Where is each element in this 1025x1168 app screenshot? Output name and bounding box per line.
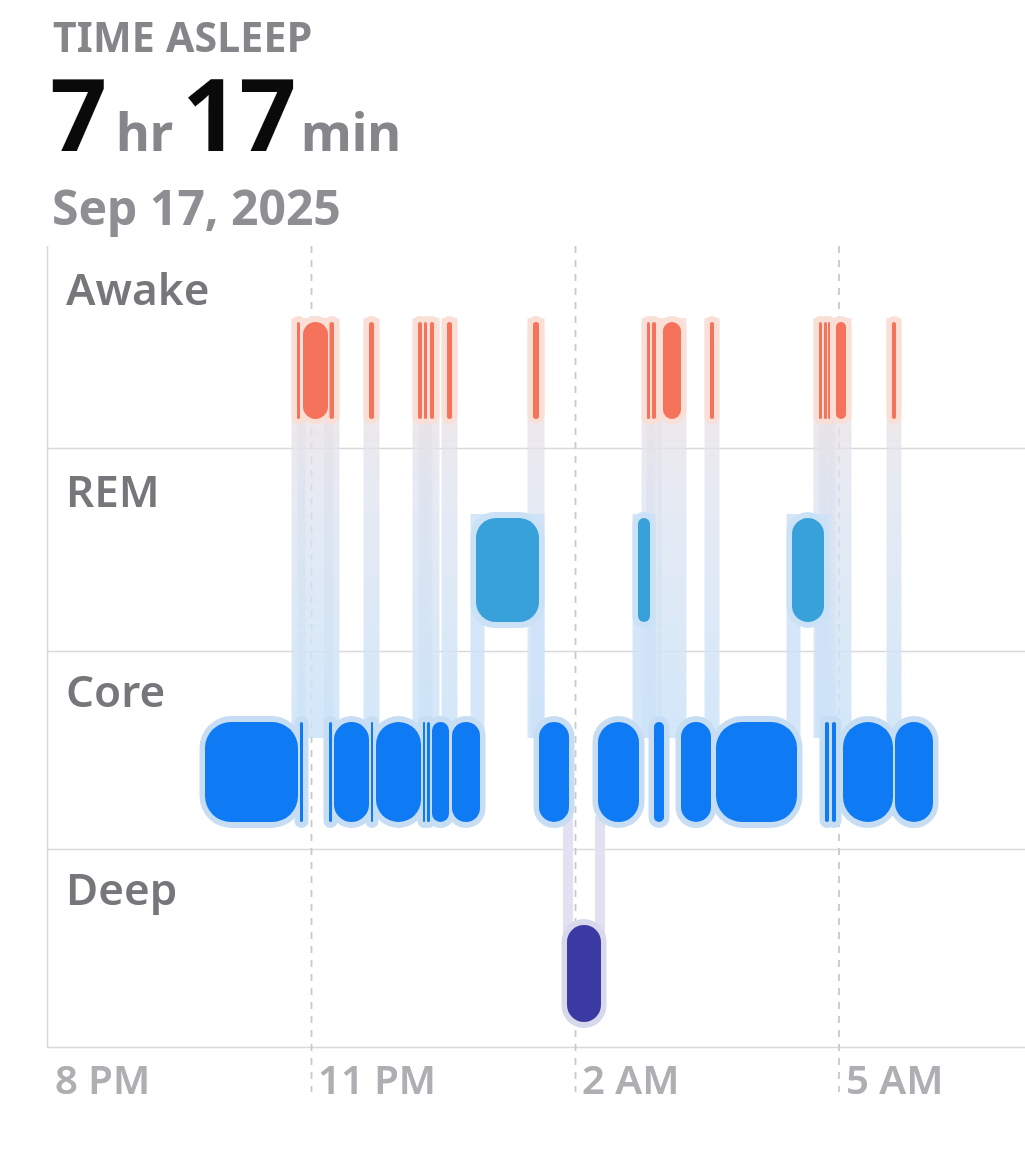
staticText: Sep 17, 2025 bbox=[52, 174, 341, 239]
staticText: Awake bbox=[66, 258, 210, 318]
staticText: Deep bbox=[66, 858, 178, 918]
staticText: hr bbox=[116, 95, 174, 166]
staticText: 17 bbox=[182, 44, 297, 180]
staticText: 7 bbox=[50, 44, 108, 180]
staticText: REM bbox=[66, 460, 160, 520]
staticText: 11 PM bbox=[318, 1051, 436, 1105]
staticText: min bbox=[301, 95, 402, 166]
staticText: Core bbox=[66, 660, 166, 720]
staticText: 8 PM bbox=[55, 1051, 151, 1105]
staticText: 2 AM bbox=[582, 1051, 680, 1105]
staticText: TIME ASLEEP bbox=[53, 8, 313, 64]
staticText: 5 AM bbox=[846, 1051, 944, 1105]
